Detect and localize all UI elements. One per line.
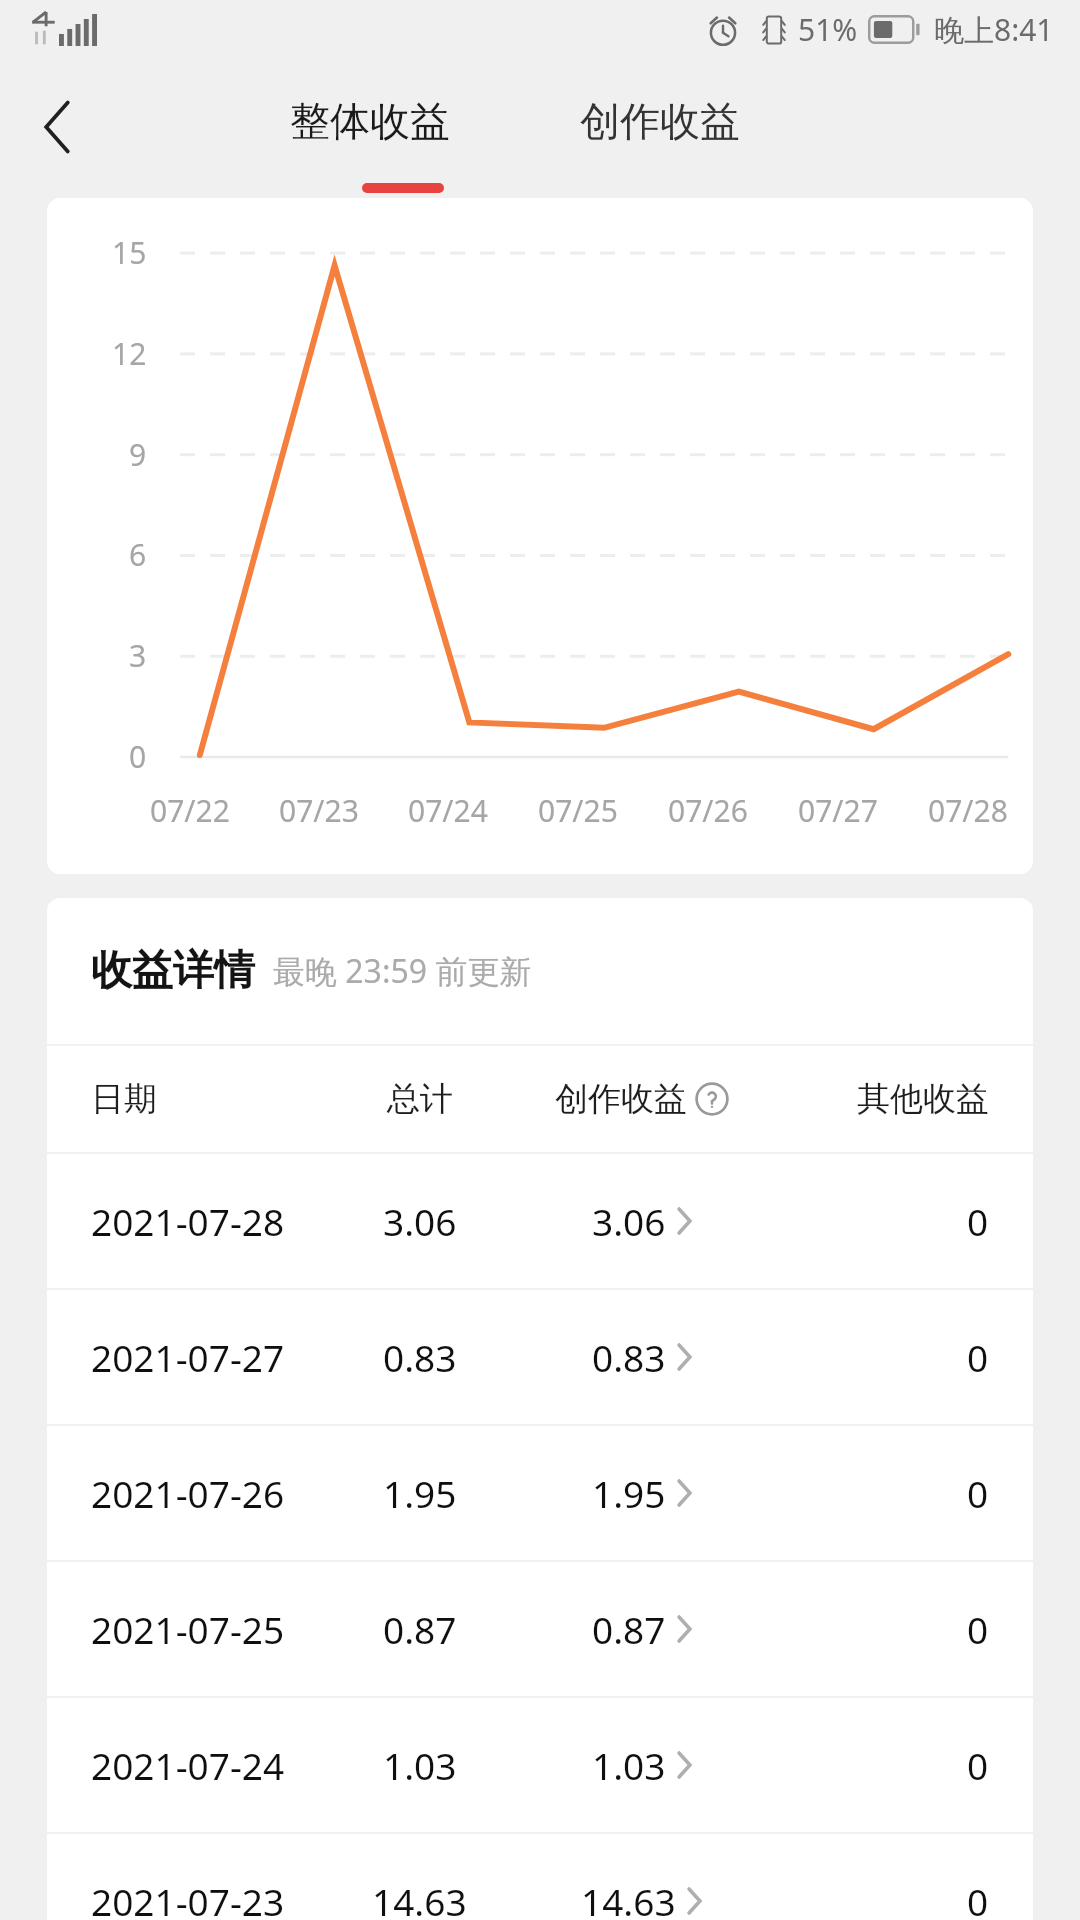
button[interactable]: 创作收益 <box>580 96 740 146</box>
staticText: 0.83 <box>592 1332 666 1382</box>
staticText: 日期 <box>91 1078 157 1120</box>
button[interactable]: 整体收益 <box>290 96 450 146</box>
staticText: 创作收益 <box>555 1078 687 1120</box>
staticText: 整体收益 <box>290 96 450 146</box>
staticText: 0.83 <box>383 1332 457 1382</box>
staticText: 0.87 <box>592 1604 666 1654</box>
staticText: 1.03 <box>383 1740 457 1790</box>
staticText: 晚上8:41 <box>934 9 1054 50</box>
other: Help <box>695 1082 729 1116</box>
staticText: 最晚 23:59 前更新 <box>273 949 532 993</box>
button[interactable]: 创作收益 <box>492 1078 792 1120</box>
staticText: 0 <box>967 1468 989 1518</box>
staticText: 0 <box>967 1332 989 1382</box>
button[interactable]: Back <box>14 84 100 170</box>
staticText: 2021-07-26 <box>91 1468 285 1518</box>
staticText: 0 <box>967 1740 989 1790</box>
button[interactable]: 2021-07-26 <box>47 1426 1033 1560</box>
staticText: 2021-07-23 <box>91 1876 285 1920</box>
staticText: 0.87 <box>383 1604 457 1654</box>
staticText: 1.95 <box>592 1468 666 1518</box>
staticText: 1.03 <box>592 1740 666 1790</box>
staticText: 07/27 <box>798 790 878 831</box>
staticText: 14.63 <box>372 1876 467 1920</box>
staticText: 0 <box>967 1196 989 1246</box>
staticText: 6 <box>129 534 147 575</box>
staticText: 07/26 <box>668 790 748 831</box>
staticText: 07/22 <box>150 790 230 831</box>
button[interactable]: 2021-07-25 <box>47 1562 1033 1696</box>
staticText: 51% <box>798 9 858 50</box>
button[interactable]: 2021-07-27 <box>47 1290 1033 1424</box>
button[interactable]: 2021-07-28 <box>47 1154 1033 1288</box>
staticText: 3 <box>129 635 147 676</box>
staticText: 收益详情 <box>91 945 255 997</box>
button[interactable]: 2021-07-24 <box>47 1698 1033 1832</box>
staticText: 9 <box>129 434 147 475</box>
staticText: 0 <box>967 1604 989 1654</box>
button[interactable]: 2021-07-23 <box>47 1834 1033 1920</box>
staticText: 12 <box>112 333 147 374</box>
staticText: 14.63 <box>581 1876 676 1920</box>
staticText: 其他收益 <box>857 1078 989 1120</box>
staticText: 0 <box>967 1876 989 1920</box>
staticText: 07/24 <box>408 790 488 831</box>
staticText: 2021-07-27 <box>91 1332 285 1382</box>
staticText: 2021-07-28 <box>91 1196 285 1246</box>
staticText: 总计 <box>387 1078 453 1120</box>
staticText: 2021-07-25 <box>91 1604 285 1654</box>
staticText: 2021-07-24 <box>91 1740 285 1790</box>
staticText: 07/23 <box>279 790 359 831</box>
staticText: 07/25 <box>538 790 618 831</box>
staticText: 1.95 <box>383 1468 457 1518</box>
staticText: 15 <box>112 232 147 273</box>
staticText: 3.06 <box>383 1196 457 1246</box>
staticText: 07/28 <box>928 790 1008 831</box>
staticText: 创作收益 <box>580 96 740 146</box>
staticText: 0 <box>129 736 147 777</box>
staticText: 3.06 <box>592 1196 666 1246</box>
